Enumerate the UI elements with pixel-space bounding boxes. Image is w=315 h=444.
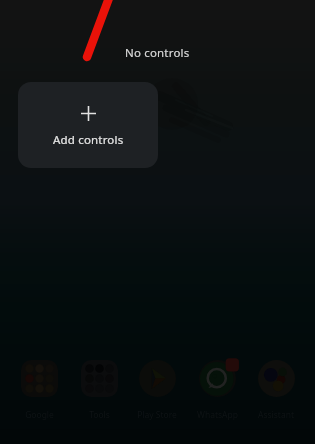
staticText: Add controls <box>53 132 124 148</box>
button[interactable]: Tools <box>72 360 126 421</box>
button[interactable]: WhatsApp <box>190 360 244 421</box>
button[interactable]: Play Store <box>130 360 184 421</box>
staticText: No controls <box>125 45 190 61</box>
button[interactable]: Add controls <box>18 82 158 168</box>
button[interactable]: Assistant <box>249 360 303 421</box>
button[interactable]: Google <box>12 360 66 421</box>
